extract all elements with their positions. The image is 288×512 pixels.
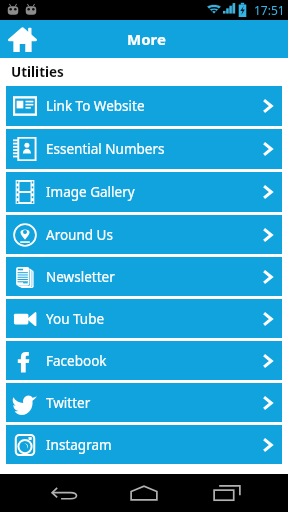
button[interactable]: Newsletter (6, 257, 282, 296)
button[interactable]: You Tube (6, 299, 282, 338)
staticText: Facebook (46, 352, 253, 370)
button[interactable]: Image Gallery (6, 172, 282, 212)
button[interactable]: Recents (203, 474, 251, 512)
button[interactable]: Instagram (6, 425, 282, 464)
staticText: Newsletter (46, 268, 253, 286)
staticText: Instagram (46, 436, 253, 454)
button[interactable]: Around Us (6, 215, 282, 254)
staticText: Essential Numbers (46, 140, 253, 158)
staticText: You Tube (46, 310, 253, 328)
button[interactable]: Home (0, 20, 44, 58)
staticText: More (127, 29, 166, 49)
button[interactable]: Link To Website (6, 86, 282, 126)
staticText: Image Gallery (46, 183, 253, 201)
staticText: Utilities (11, 63, 64, 81)
button[interactable]: Back (41, 474, 89, 512)
button[interactable]: Essential Numbers (6, 129, 282, 169)
staticText: Around Us (46, 226, 253, 244)
button[interactable]: Home (120, 474, 168, 512)
staticText: Link To Website (46, 97, 253, 115)
staticText: 17:51 (254, 2, 285, 18)
staticText: Twitter (46, 394, 253, 412)
button[interactable]: Facebook (6, 341, 282, 380)
button[interactable]: Twitter (6, 383, 282, 422)
